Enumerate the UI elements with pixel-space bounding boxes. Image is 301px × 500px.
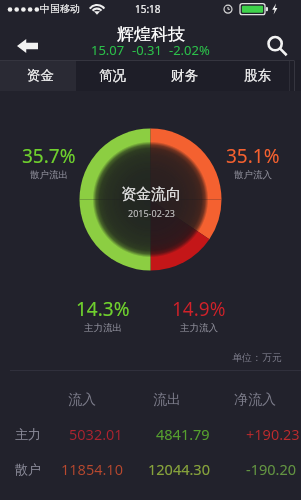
staticText: 流入: [68, 391, 96, 409]
staticText: 辉煌科技: [117, 24, 185, 45]
staticText: 简况: [99, 67, 126, 84]
button[interactable]: 简况: [76, 60, 148, 91]
staticText: -190.20: [246, 459, 297, 479]
staticText: 主力流入: [180, 322, 218, 334]
button[interactable]: Back: [0, 18, 54, 78]
button[interactable]: 主力: [0, 418, 301, 453]
staticText: 35.1%: [226, 143, 280, 169]
staticText: 15.07: [91, 41, 125, 59]
button[interactable]: Search: [258, 27, 294, 63]
staticText: 散户: [15, 461, 41, 477]
staticText: 股东: [244, 67, 271, 84]
staticText: 主力流出: [84, 322, 122, 334]
staticText: +190.23: [246, 424, 300, 444]
staticText: 财务: [171, 67, 198, 84]
staticText: 12044.30: [148, 459, 210, 479]
staticText: 散户流出: [30, 169, 68, 181]
button[interactable]: 散户: [0, 453, 301, 488]
staticText: 散户流入: [234, 169, 272, 181]
staticText: 2015-02-23: [128, 207, 175, 219]
staticText: 35.7%: [22, 143, 76, 169]
staticText: 14.9%: [172, 296, 226, 322]
staticText: 14.3%: [76, 296, 130, 322]
staticText: -2.02%: [169, 41, 210, 59]
button[interactable]: 财务: [148, 60, 221, 91]
staticText: 主力: [15, 426, 41, 442]
staticText: 资金流向: [121, 185, 181, 204]
staticText: 11854.10: [61, 459, 123, 479]
staticText: -0.31: [132, 41, 162, 59]
staticText: 净流入: [234, 391, 276, 409]
staticText: 中国移动: [40, 2, 80, 15]
button[interactable]: 股东: [221, 60, 294, 91]
staticText: 流出: [153, 391, 181, 409]
staticText: 15:18: [135, 2, 161, 16]
staticText: 单位：万元: [232, 351, 282, 364]
staticText: 4841.79: [156, 424, 210, 444]
button[interactable]: 资金: [4, 60, 76, 91]
staticText: 5032.01: [69, 424, 123, 444]
staticText: 资金: [27, 67, 54, 84]
